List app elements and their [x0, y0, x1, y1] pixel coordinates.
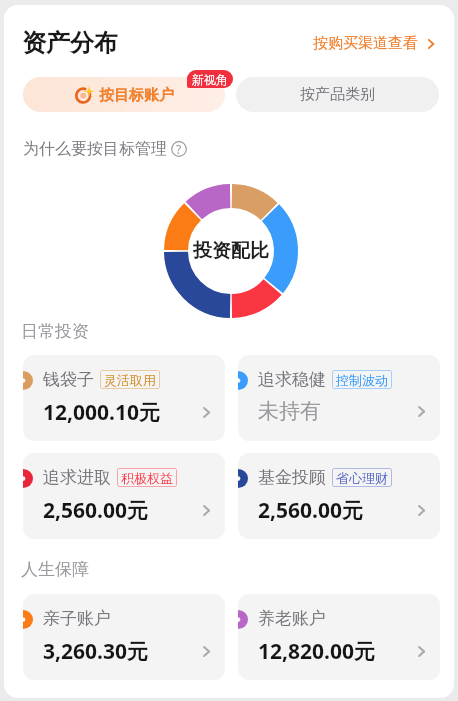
- button[interactable]: 基金投顾: [238, 453, 440, 539]
- staticText: 控制波动: [336, 372, 388, 388]
- other: Help: [171, 141, 187, 157]
- button[interactable]: 追求稳健: [238, 355, 440, 441]
- staticText: 按目标账户: [99, 86, 174, 105]
- staticText: 新视角: [192, 72, 228, 87]
- staticText: 投资配比: [193, 239, 269, 263]
- button[interactable]: 按购买渠道查看: [309, 30, 442, 57]
- staticText: 3,260.30元: [43, 637, 148, 666]
- staticText: 2,560.00元: [258, 496, 363, 525]
- staticText: 未持有: [258, 398, 321, 424]
- staticText: 资产分布: [22, 28, 118, 58]
- staticText: ?: [176, 141, 182, 157]
- staticText: 养老账户: [258, 608, 326, 629]
- staticText: 12,000.10元: [43, 398, 160, 427]
- button[interactable]: 为什么要按目标管理: [23, 139, 187, 159]
- staticText: 钱袋子: [43, 369, 94, 390]
- button[interactable]: 追求进取: [23, 453, 225, 539]
- staticText: 积极权益: [121, 470, 173, 486]
- staticText: 灵活取用: [104, 372, 156, 388]
- staticText: 2,560.00元: [43, 496, 148, 525]
- staticText: 基金投顾: [258, 467, 326, 488]
- staticText: 省心理财: [336, 470, 388, 486]
- staticText: 亲子账户: [43, 608, 111, 629]
- staticText: 追求进取: [43, 467, 111, 488]
- staticText: 为什么要按目标管理: [23, 139, 167, 159]
- staticText: 日常投资: [21, 321, 89, 342]
- staticText: 追求稳健: [258, 369, 326, 390]
- staticText: 按购买渠道查看: [313, 34, 418, 53]
- staticText: 人生保障: [21, 559, 89, 580]
- button[interactable]: 按目标账户: [23, 77, 225, 112]
- button[interactable]: 亲子账户: [23, 594, 225, 680]
- staticText: 12,820.00元: [258, 637, 375, 666]
- button[interactable]: 养老账户: [238, 594, 440, 680]
- button[interactable]: 按产品类别: [236, 77, 439, 112]
- staticText: 按产品类别: [300, 85, 375, 104]
- button[interactable]: 钱袋子: [23, 355, 225, 441]
